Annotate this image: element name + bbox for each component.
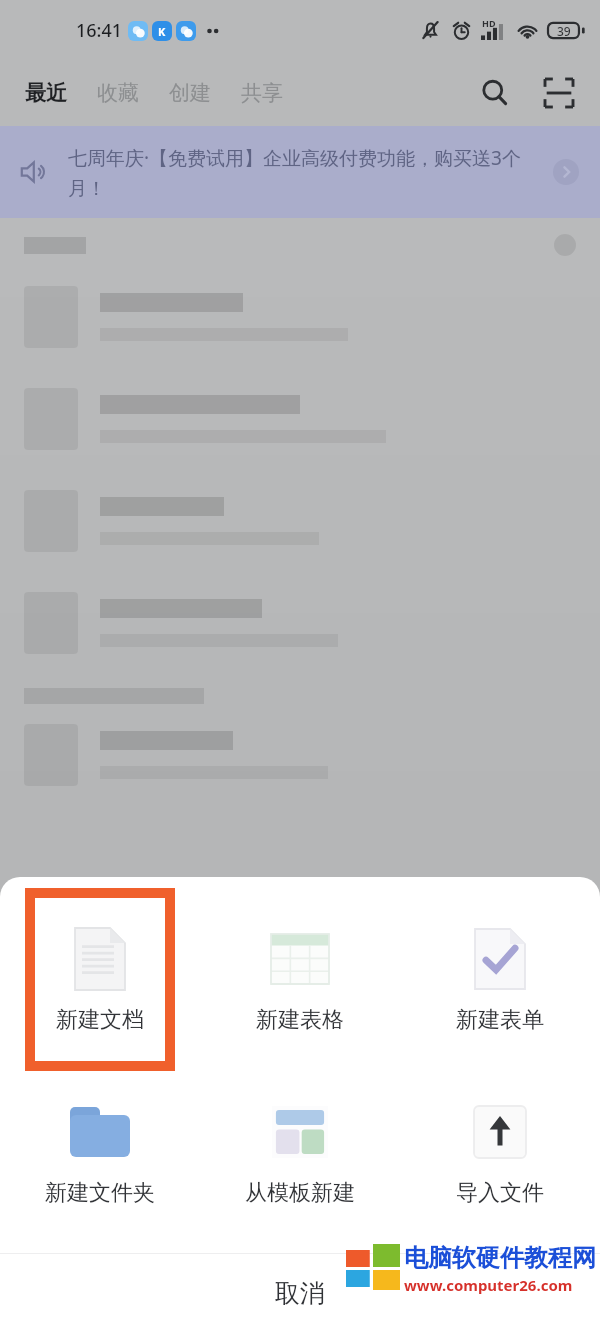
staticText: 七周年庆·【免费试用】企业高级付费功能，购买送3个月！: [68, 145, 526, 200]
staticText: 新建文档: [56, 1006, 144, 1034]
button[interactable]: 共享: [238, 72, 286, 114]
staticText: 最近: [25, 80, 67, 106]
button[interactable]: 新建文件夹: [0, 1066, 200, 1239]
button[interactable]: 最近: [22, 72, 70, 114]
staticText: K: [158, 24, 166, 39]
staticText: 39: [557, 23, 571, 39]
staticText: 收藏: [97, 80, 139, 106]
staticText: 16:41: [76, 18, 123, 43]
staticText: 新建文件夹: [45, 1179, 155, 1207]
staticText: www.computer26.com: [404, 1275, 573, 1295]
staticText: 新建表格: [256, 1006, 344, 1034]
staticText: 共享: [241, 80, 283, 106]
staticText: 从模板新建: [245, 1179, 355, 1207]
staticText: 导入文件: [456, 1179, 544, 1207]
button[interactable]: Search: [472, 70, 518, 116]
button[interactable]: Scan code: [536, 70, 582, 116]
button[interactable]: 从模板新建: [200, 1066, 400, 1239]
button[interactable]: 新建表单: [400, 893, 600, 1066]
button[interactable]: 创建: [166, 72, 214, 114]
button[interactable]: 取消: [0, 1254, 600, 1333]
staticText: 电脑软硬件教程网: [404, 1243, 596, 1273]
staticText: 新建表单: [456, 1006, 544, 1034]
staticText: HD: [482, 17, 496, 29]
staticText: 取消: [275, 1278, 325, 1309]
button[interactable]: 七周年庆·【免费试用】企业高级付费功能，购买送3个月！: [0, 126, 600, 218]
button[interactable]: 新建表格: [200, 893, 400, 1066]
button[interactable]: 收藏: [94, 72, 142, 114]
staticText: 创建: [169, 80, 211, 106]
button[interactable]: 导入文件: [400, 1066, 600, 1239]
button[interactable]: Next: [550, 156, 582, 188]
button[interactable]: 新建文档: [0, 893, 200, 1066]
